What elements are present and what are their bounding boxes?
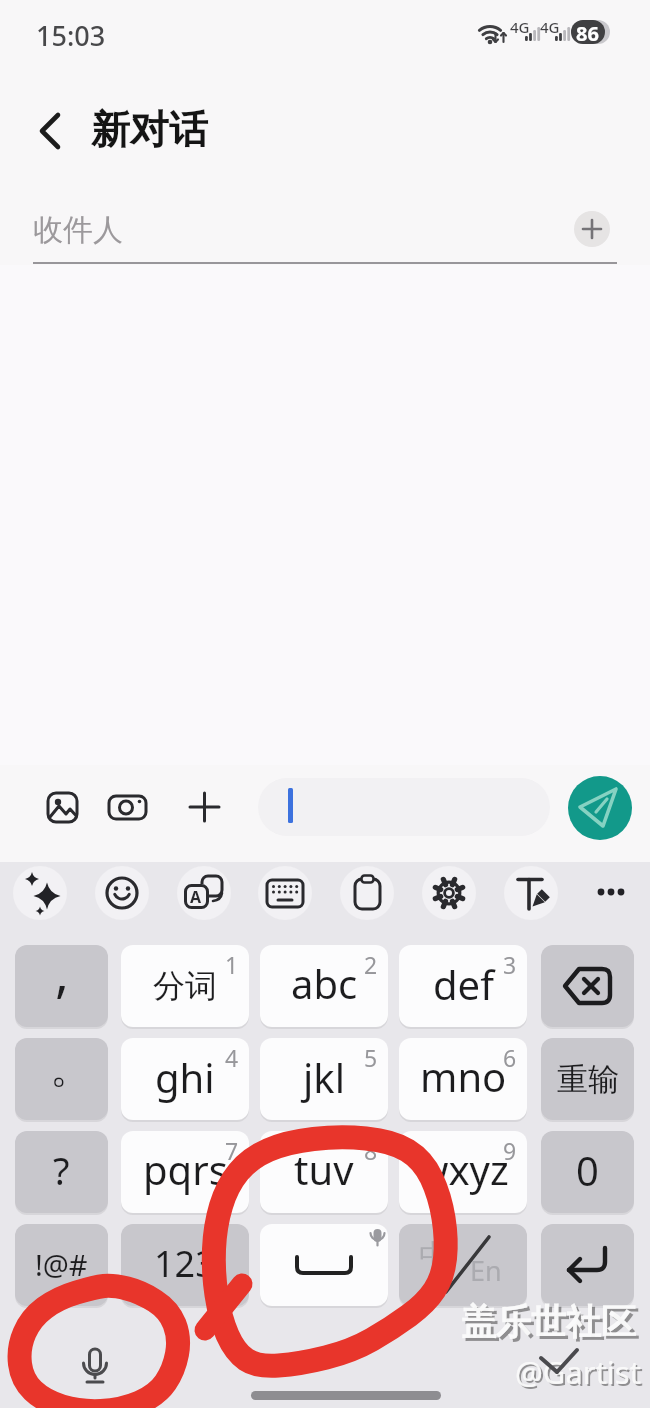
staticText: mno <box>420 1049 507 1103</box>
staticText: 新对话 <box>91 105 208 154</box>
button[interactable] <box>258 778 550 836</box>
button[interactable] <box>13 866 67 920</box>
button[interactable] <box>111 785 156 830</box>
staticText: 15:03 <box>36 17 106 54</box>
staticText: 4G <box>540 17 560 37</box>
staticText: @Gartist <box>517 1353 643 1395</box>
staticText: 123 <box>154 1239 216 1288</box>
staticText: 3 <box>503 949 517 980</box>
staticText: 4G <box>510 17 530 37</box>
button[interactable] <box>40 785 85 830</box>
button[interactable] <box>177 866 231 920</box>
button[interactable]: !@# <box>15 1224 108 1306</box>
button[interactable] <box>574 211 610 247</box>
staticText: jkl <box>303 1050 345 1104</box>
staticText: 8 <box>364 1135 378 1166</box>
button[interactable]: jkl <box>260 1038 388 1120</box>
staticText: 1 <box>225 949 239 980</box>
staticText: 4 <box>225 1042 239 1073</box>
button[interactable] <box>70 1335 120 1387</box>
button[interactable]: 123 <box>121 1224 249 1306</box>
staticText: 0 <box>576 1143 599 1197</box>
button[interactable]: mno <box>399 1038 527 1120</box>
staticText: A <box>190 886 202 908</box>
staticText: 7 <box>225 1135 239 1166</box>
button[interactable]: def <box>399 945 527 1027</box>
button[interactable] <box>182 785 227 830</box>
staticText: 。 <box>50 1042 92 1095</box>
button[interactable] <box>568 776 632 840</box>
button[interactable] <box>340 866 394 920</box>
staticText: 2 <box>364 949 378 980</box>
staticText: 重输 <box>557 1060 619 1099</box>
staticText: 盖乐世社区 <box>464 1303 639 1347</box>
staticText: , <box>55 945 69 1007</box>
staticText: 5 <box>364 1042 378 1073</box>
staticText: 86 <box>576 20 599 47</box>
staticText: pqrs <box>143 1142 228 1196</box>
button[interactable] <box>541 1224 634 1306</box>
button[interactable] <box>260 1224 388 1306</box>
button[interactable] <box>586 872 630 914</box>
staticText: En <box>470 1252 502 1289</box>
button[interactable]: pqrs <box>121 1131 249 1213</box>
button[interactable] <box>422 866 476 920</box>
staticText: abc <box>291 956 358 1010</box>
button[interactable] <box>34 108 74 152</box>
staticText: 中 <box>419 1237 449 1275</box>
button[interactable] <box>258 866 312 920</box>
button[interactable]: ? <box>15 1131 108 1213</box>
button[interactable] <box>95 866 149 920</box>
staticText: tuv <box>294 1142 354 1196</box>
staticText: ? <box>53 1144 70 1196</box>
button[interactable]: 分词 <box>121 945 249 1027</box>
staticText: 9 <box>503 1135 517 1166</box>
button[interactable]: tuv <box>260 1131 388 1213</box>
button[interactable]: 重输 <box>541 1038 634 1120</box>
staticText: ghi <box>155 1050 215 1104</box>
staticText: wxyz <box>417 1142 509 1196</box>
staticText: @Gartist <box>515 1351 641 1393</box>
staticText: 分词 <box>153 966 217 1006</box>
button[interactable]: 。 <box>15 1038 108 1120</box>
button[interactable] <box>541 945 634 1027</box>
staticText: 6 <box>503 1042 517 1073</box>
button[interactable] <box>504 866 558 920</box>
staticText: 收件人 <box>33 211 123 249</box>
button[interactable]: , <box>15 945 108 1027</box>
staticText: def <box>433 957 494 1011</box>
button[interactable]: abc <box>260 945 388 1027</box>
staticText: !@# <box>35 1245 88 1284</box>
button[interactable]: ghi <box>121 1038 249 1120</box>
button[interactable]: wxyz <box>399 1131 527 1213</box>
button[interactable] <box>399 1224 527 1306</box>
button[interactable]: 0 <box>541 1131 634 1213</box>
staticText: 盖乐世社区 <box>461 1300 636 1344</box>
